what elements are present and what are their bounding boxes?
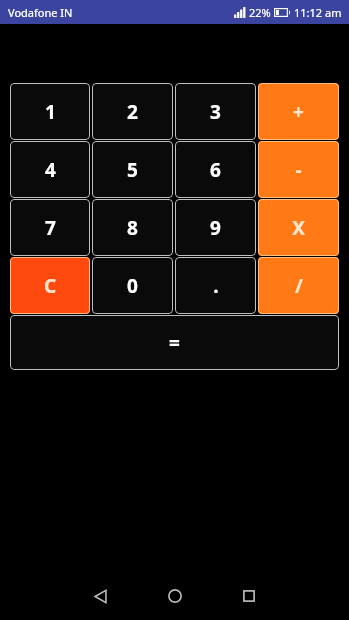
- button[interactable]: 7: [10, 199, 90, 256]
- staticText: 11:12 am: [294, 5, 342, 20]
- button[interactable]: /: [258, 257, 339, 314]
- staticText: X: [292, 215, 305, 241]
- staticText: 9: [210, 215, 221, 241]
- staticText: -: [295, 157, 302, 183]
- staticText: Vodafone IN: [8, 5, 73, 20]
- staticText: /: [295, 273, 303, 299]
- staticText: 6: [210, 157, 221, 183]
- button[interactable]: 4: [10, 141, 90, 198]
- button[interactable]: Back: [84, 580, 116, 612]
- staticText: =: [169, 330, 180, 356]
- button[interactable]: 3: [175, 83, 256, 140]
- staticText: 7: [45, 215, 56, 241]
- button[interactable]: 0: [92, 257, 173, 314]
- staticText: C: [44, 273, 57, 299]
- button[interactable]: 9: [175, 199, 256, 256]
- staticText: .: [213, 273, 219, 299]
- button[interactable]: C: [10, 257, 90, 314]
- button[interactable]: .: [175, 257, 256, 314]
- button[interactable]: 2: [92, 83, 173, 140]
- staticText: 22%: [249, 5, 271, 20]
- button[interactable]: Recents: [233, 580, 265, 612]
- staticText: 0: [127, 273, 138, 299]
- button[interactable]: +: [258, 83, 339, 140]
- staticText: 8: [127, 215, 138, 241]
- button[interactable]: =: [10, 315, 339, 370]
- button[interactable]: 8: [92, 199, 173, 256]
- staticText: 5: [127, 157, 138, 183]
- button[interactable]: 1: [10, 83, 90, 140]
- staticText: 4: [45, 157, 56, 183]
- staticText: 1: [45, 99, 56, 125]
- staticText: 2: [127, 99, 138, 125]
- button[interactable]: -: [258, 141, 339, 198]
- staticText: 3: [210, 99, 221, 125]
- button[interactable]: 6: [175, 141, 256, 198]
- staticText: +: [293, 99, 304, 125]
- button[interactable]: X: [258, 199, 339, 256]
- button[interactable]: Home: [159, 580, 191, 612]
- button[interactable]: 5: [92, 141, 173, 198]
